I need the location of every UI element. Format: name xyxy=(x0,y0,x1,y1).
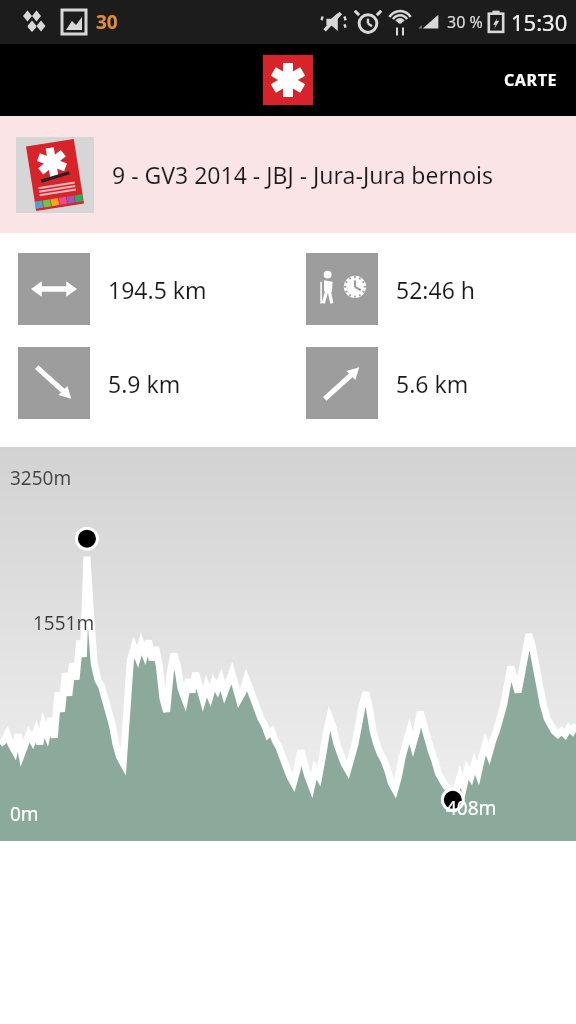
staticText: 52:46 h xyxy=(396,274,475,305)
button[interactable]: Descent xyxy=(0,347,288,419)
staticText: 15:30 xyxy=(511,7,568,37)
staticText: 3250m xyxy=(10,465,72,491)
button[interactable]: Distance xyxy=(0,253,288,325)
staticText: 5.9 km xyxy=(108,368,181,399)
other: Distance xyxy=(18,253,90,325)
button[interactable]: Ascent xyxy=(288,347,576,419)
staticText: 5.6 km xyxy=(396,368,469,399)
staticText: 0m xyxy=(10,801,39,827)
other: Ascent xyxy=(306,347,378,419)
staticText: 30 xyxy=(96,9,118,35)
button[interactable]: Duration xyxy=(288,253,576,325)
staticText: 30 % xyxy=(447,11,483,33)
other: Duration xyxy=(306,253,378,325)
other: Descent xyxy=(18,347,90,419)
button[interactable]: App logo xyxy=(263,55,313,105)
staticText: 194.5 km xyxy=(108,274,207,305)
button[interactable]: Elevation profile xyxy=(0,447,576,841)
staticText: 9 - GV3 2014 - JBJ - Jura-Jura bernois xyxy=(112,159,494,190)
staticText: 1551m xyxy=(33,610,95,636)
staticText: 408m xyxy=(446,795,497,821)
button[interactable]: 9 - GV3 2014 - JBJ - Jura-Jura bernois xyxy=(0,116,576,233)
button[interactable]: CARTE xyxy=(486,53,576,107)
staticText: CARTE xyxy=(504,69,558,91)
